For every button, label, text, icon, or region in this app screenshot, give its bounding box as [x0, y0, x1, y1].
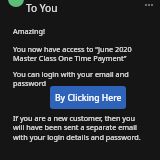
staticText: You now have access to “June 2020 — [13, 44, 132, 54]
staticText: will have been sent a separate email — [13, 122, 137, 132]
staticText: with your login details and password. — [13, 132, 141, 142]
staticText: By Clicking Here — [55, 92, 122, 104]
staticText: Amazing! — [13, 26, 45, 36]
button[interactable]: More options — [141, 0, 157, 13]
staticText: Master Class One Time Payment” — [13, 53, 127, 63]
button[interactable]: By Clicking Here — [50, 86, 126, 109]
staticText: password — [13, 78, 47, 88]
staticText: You can login with your email and — [13, 69, 129, 79]
staticText: If you are a new customer, then you — [13, 113, 136, 123]
staticText: To You — [26, 1, 58, 15]
